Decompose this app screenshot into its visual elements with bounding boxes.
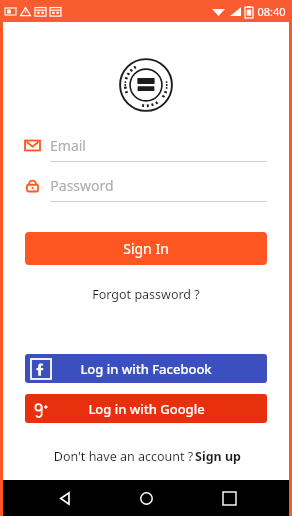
- staticText: 08:40: [257, 4, 286, 19]
- button[interactable]: Don't have an account ?: [46, 444, 247, 469]
- staticText: Log in with Facebook: [80, 360, 212, 378]
- staticText: Don't have an account ?: [52, 448, 195, 465]
- staticText: Password: [50, 176, 114, 195]
- staticText: Log in with Google: [88, 400, 205, 418]
- button[interactable]: Recent apps: [207, 480, 251, 516]
- button[interactable]: Log in with Facebook: [25, 354, 267, 383]
- button[interactable]: Log in with Google: [25, 394, 267, 423]
- button[interactable]: Forgot password ?: [86, 283, 206, 306]
- staticText: Email: [50, 136, 86, 155]
- staticText: Sign In: [123, 239, 169, 258]
- staticText: Sign up: [195, 448, 241, 465]
- button[interactable]: Sign In: [25, 232, 267, 265]
- staticText: Forgot password ?: [92, 286, 200, 303]
- button[interactable]: Home: [124, 480, 168, 516]
- button[interactable]: Back: [42, 480, 86, 516]
